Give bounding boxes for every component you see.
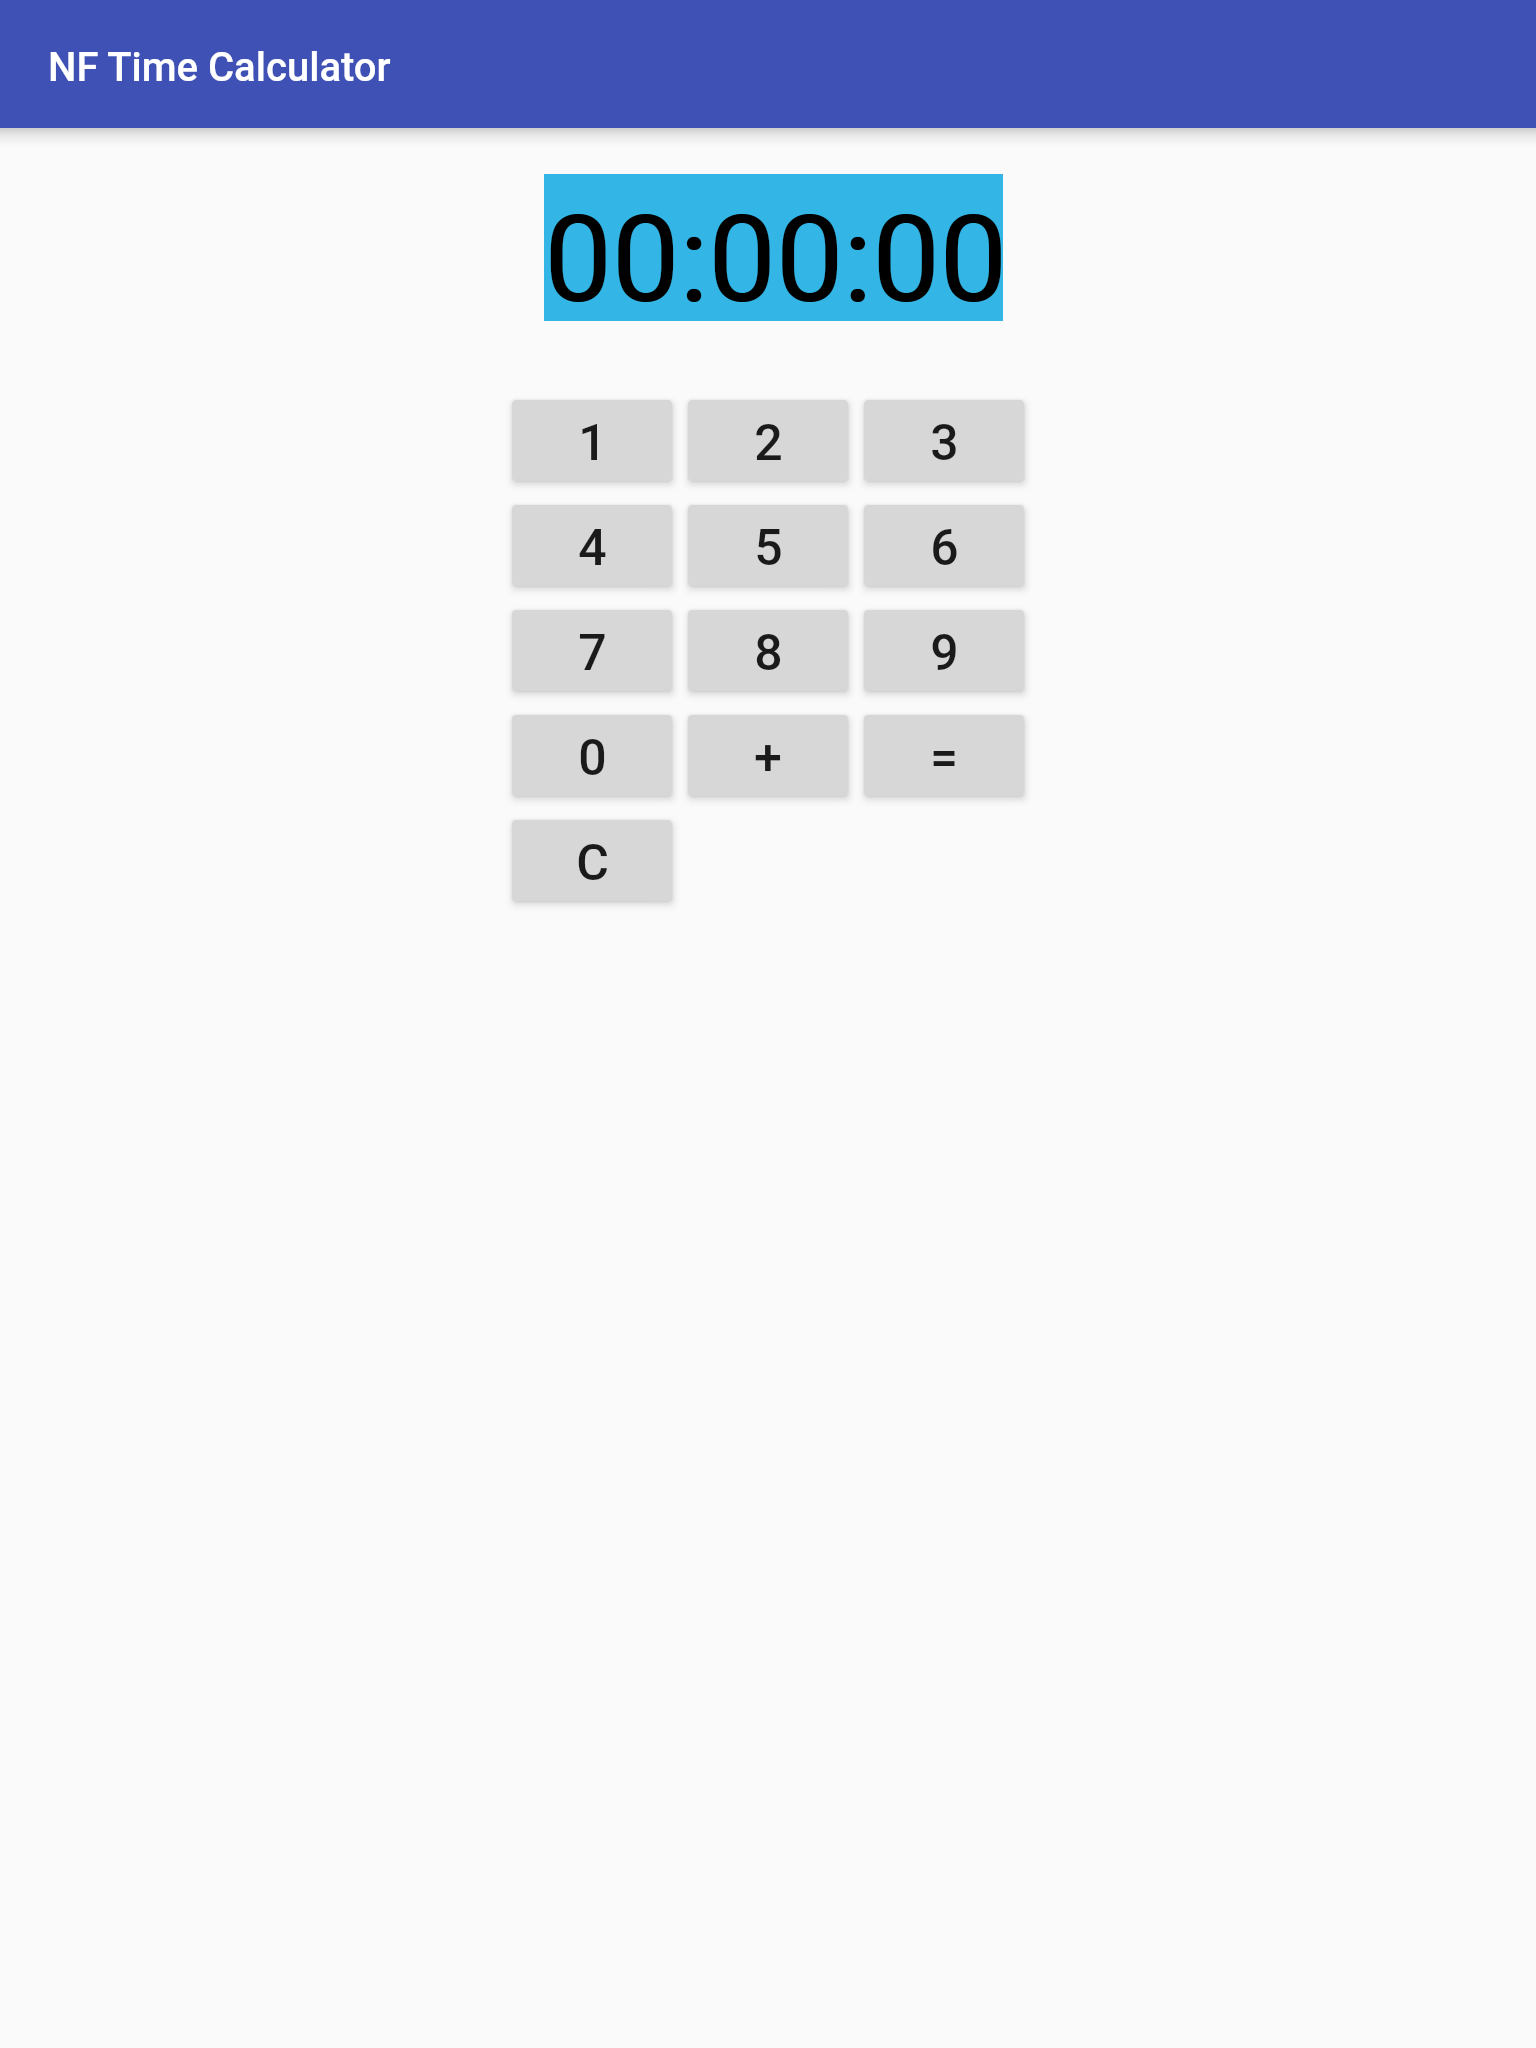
button[interactable]: = bbox=[864, 715, 1024, 796]
staticText: 00:00:00 bbox=[544, 190, 1003, 331]
button[interactable]: 8 bbox=[688, 610, 848, 691]
button[interactable]: 9 bbox=[864, 610, 1024, 691]
staticText: C bbox=[576, 834, 609, 893]
staticText: NF Time Calculator bbox=[48, 44, 391, 91]
staticText: 7 bbox=[578, 624, 607, 683]
staticText: 2 bbox=[754, 414, 783, 473]
staticText: = bbox=[930, 729, 958, 788]
button[interactable]: 0 bbox=[512, 715, 672, 796]
button[interactable]: C bbox=[512, 820, 672, 901]
button[interactable]: 3 bbox=[864, 400, 1024, 481]
staticText: 3 bbox=[930, 414, 959, 473]
button[interactable]: 4 bbox=[512, 505, 672, 586]
button[interactable]: 7 bbox=[512, 610, 672, 691]
staticText: 1 bbox=[578, 414, 607, 473]
button[interactable]: 5 bbox=[688, 505, 848, 586]
button[interactable]: 2 bbox=[688, 400, 848, 481]
staticText: 5 bbox=[754, 519, 783, 578]
staticText: 4 bbox=[578, 519, 607, 578]
button[interactable]: 1 bbox=[512, 400, 672, 481]
staticText: 9 bbox=[930, 624, 959, 683]
button[interactable]: + bbox=[688, 715, 848, 796]
staticText: 6 bbox=[930, 519, 959, 578]
button[interactable]: 6 bbox=[864, 505, 1024, 586]
staticText: + bbox=[754, 729, 782, 788]
staticText: 8 bbox=[754, 624, 783, 683]
staticText: 0 bbox=[578, 729, 607, 788]
